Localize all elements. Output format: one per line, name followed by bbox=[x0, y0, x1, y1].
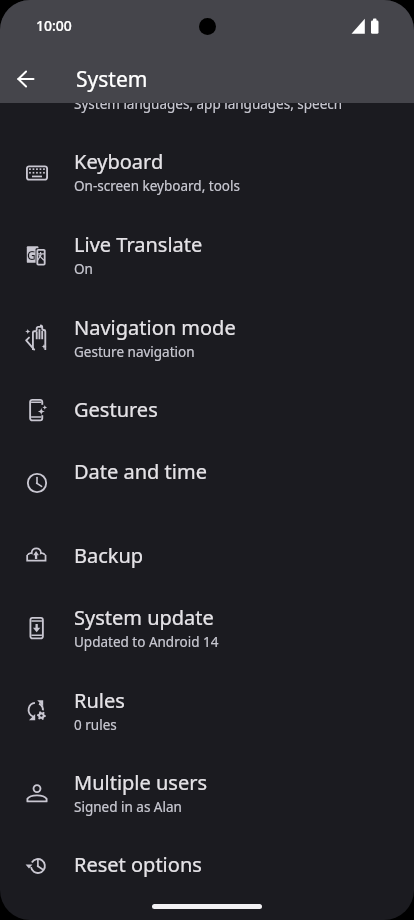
staticText: Languages bbox=[74, 66, 178, 93]
staticText: Reset options bbox=[74, 851, 202, 878]
staticText: Backup bbox=[74, 542, 144, 569]
staticText: Live Translate bbox=[74, 231, 203, 258]
staticText: Navigation mode bbox=[74, 314, 236, 341]
button[interactable]: G bbox=[0, 214, 414, 297]
button[interactable]: Date and time bbox=[0, 441, 414, 525]
button[interactable]: Keyboard bbox=[0, 131, 414, 214]
staticText: System bbox=[76, 65, 148, 94]
staticText: On-screen keyboard, tools bbox=[74, 177, 240, 195]
button[interactable]: Gestures bbox=[0, 379, 414, 441]
button[interactable]: Multiple users bbox=[0, 752, 414, 834]
button[interactable]: Backup bbox=[0, 525, 414, 587]
staticText: Multiple users bbox=[74, 769, 208, 796]
staticText: 10:00 bbox=[36, 16, 72, 35]
button[interactable]: Rules bbox=[0, 670, 414, 752]
staticText: On bbox=[74, 260, 93, 278]
staticText: Date and time bbox=[74, 458, 207, 485]
button[interactable]: Navigation mode bbox=[0, 297, 414, 379]
staticText: G bbox=[27, 247, 36, 263]
staticText: Rules bbox=[74, 687, 125, 714]
button[interactable]: Reset options bbox=[0, 834, 414, 896]
staticText: System update bbox=[74, 604, 214, 631]
staticText: Gesture navigation bbox=[74, 343, 195, 361]
staticText: Signed in as Alan bbox=[74, 798, 182, 816]
button[interactable]: System update bbox=[0, 587, 414, 670]
staticText: 0 rules bbox=[74, 716, 117, 734]
staticText: Gestures bbox=[74, 396, 158, 423]
button[interactable]: Languages bbox=[0, 49, 414, 131]
staticText: Keyboard bbox=[74, 148, 164, 175]
button[interactable]: Back bbox=[8, 59, 48, 99]
staticText: System languages, app languages, speech bbox=[74, 95, 343, 113]
staticText: Updated to Android 14 bbox=[74, 633, 219, 651]
